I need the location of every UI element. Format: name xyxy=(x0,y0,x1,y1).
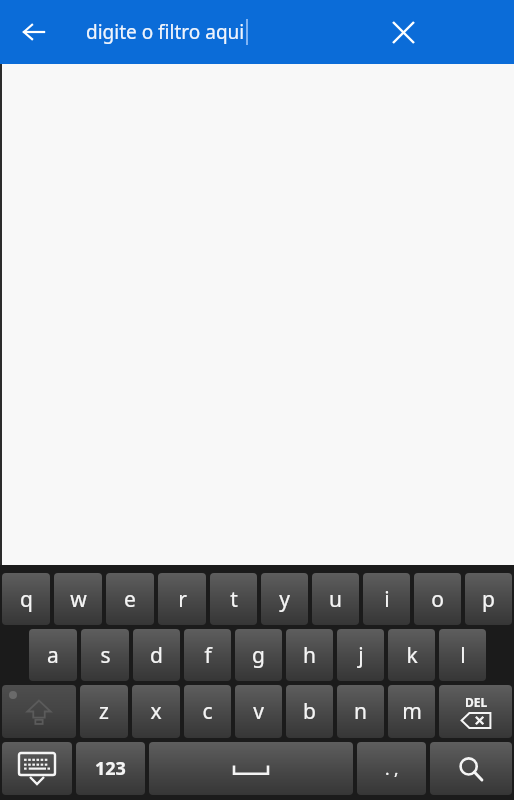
button[interactable]: Numbers xyxy=(76,742,145,795)
button[interactable]: h xyxy=(286,629,333,681)
staticText: w xyxy=(70,585,87,614)
staticText: e xyxy=(124,585,136,614)
staticText: s xyxy=(100,641,111,670)
button[interactable]: j xyxy=(337,629,384,681)
button[interactable]: l xyxy=(439,629,486,681)
button[interactable]: Hide keyboard xyxy=(2,742,72,795)
button[interactable]: Back xyxy=(12,10,56,54)
button[interactable]: d xyxy=(133,629,180,681)
staticText: y xyxy=(279,585,290,614)
staticText: q xyxy=(20,585,33,614)
button[interactable]: Space xyxy=(149,742,353,795)
button[interactable]: f xyxy=(184,629,231,681)
staticText: l xyxy=(460,641,466,670)
staticText: digite o filtro aqui xyxy=(86,19,245,45)
button[interactable]: t xyxy=(210,573,257,625)
staticText: r xyxy=(178,585,187,614)
staticText: k xyxy=(406,641,418,670)
button[interactable]: q xyxy=(2,573,50,625)
button[interactable]: r xyxy=(158,573,206,625)
staticText: g xyxy=(252,641,265,670)
button[interactable]: x xyxy=(132,685,180,738)
button[interactable]: v xyxy=(235,685,282,738)
staticText: i xyxy=(384,585,390,614)
button[interactable]: o xyxy=(414,573,461,625)
staticText: . , xyxy=(385,757,399,780)
button[interactable]: z xyxy=(80,685,128,738)
button[interactable]: k xyxy=(388,629,435,681)
staticText: p xyxy=(482,585,495,614)
button[interactable]: p xyxy=(465,573,512,625)
button[interactable]: m xyxy=(388,685,435,738)
staticText: d xyxy=(150,641,163,670)
staticText: a xyxy=(47,641,59,670)
button[interactable]: c xyxy=(184,685,231,738)
staticText: v xyxy=(253,697,264,726)
button[interactable]: Shift xyxy=(2,685,76,738)
button[interactable]: Clear xyxy=(380,9,426,55)
button[interactable]: n xyxy=(337,685,384,738)
staticText: n xyxy=(354,697,367,726)
staticText: c xyxy=(202,697,213,726)
button[interactable]: w xyxy=(54,573,102,625)
button[interactable]: g xyxy=(235,629,282,681)
button[interactable]: b xyxy=(286,685,333,738)
staticText: u xyxy=(329,585,342,614)
staticText: f xyxy=(204,641,212,670)
button[interactable]: Search xyxy=(430,742,512,795)
staticText: o xyxy=(431,585,444,614)
staticText: j xyxy=(358,641,364,670)
button[interactable]: i xyxy=(363,573,410,625)
button[interactable]: s xyxy=(81,629,129,681)
button[interactable]: Delete xyxy=(439,685,512,738)
staticText: b xyxy=(303,697,316,726)
button[interactable]: e xyxy=(106,573,154,625)
staticText: h xyxy=(303,641,316,670)
button[interactable]: y xyxy=(261,573,308,625)
staticText: z xyxy=(99,697,109,726)
staticText: 123 xyxy=(95,756,126,781)
button[interactable]: a xyxy=(29,629,77,681)
button[interactable]: Period comma xyxy=(357,742,426,795)
button[interactable]: u xyxy=(312,573,359,625)
staticText: t xyxy=(230,585,238,614)
staticText: x xyxy=(150,697,162,726)
staticText: m xyxy=(402,697,422,726)
staticText: DEL xyxy=(465,694,488,710)
